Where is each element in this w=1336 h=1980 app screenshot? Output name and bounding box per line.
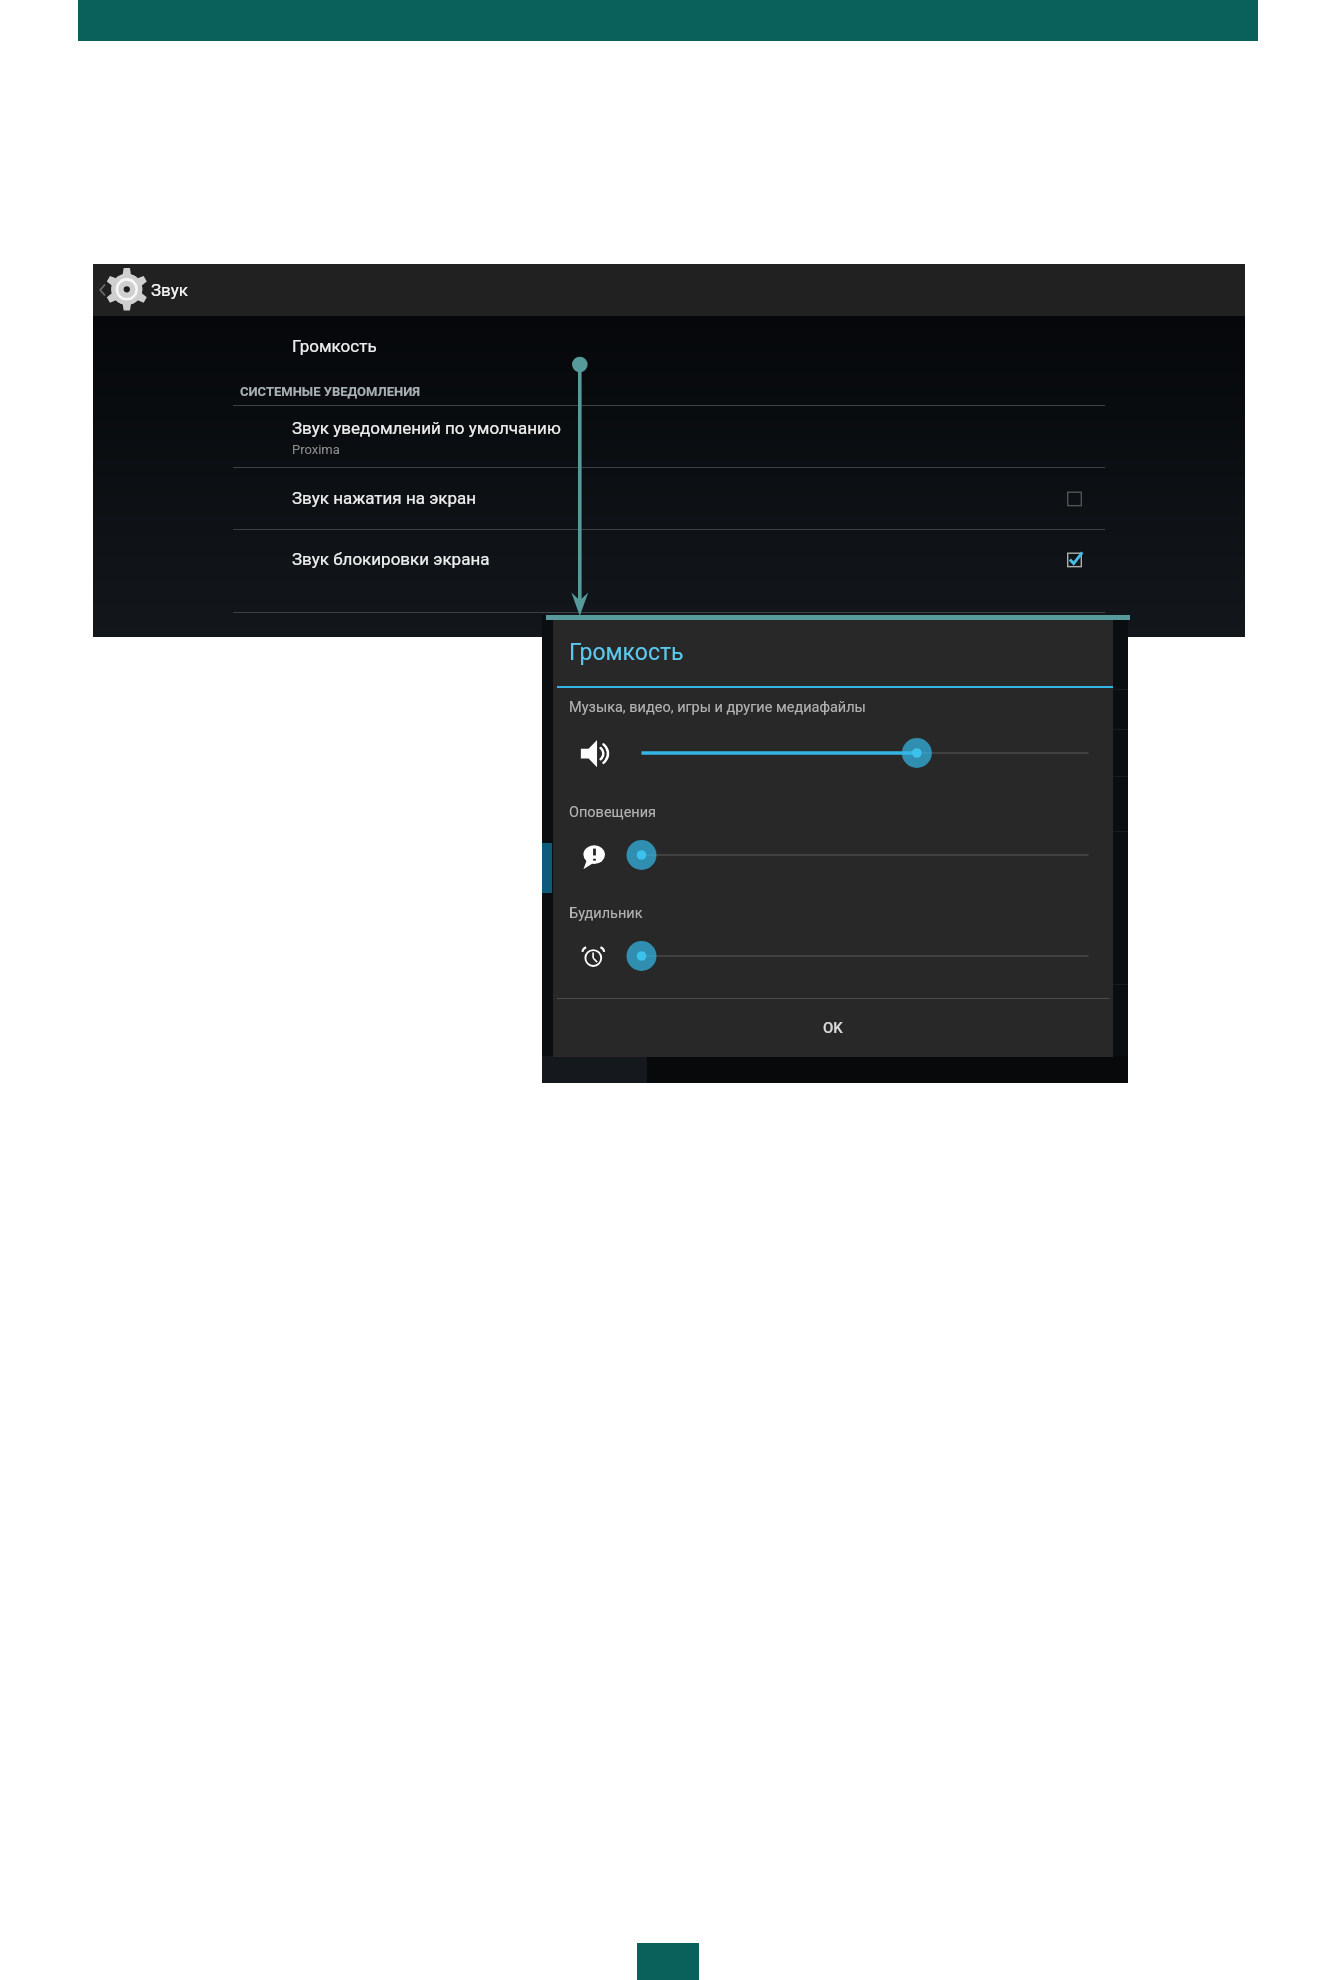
button[interactable]: Звук блокировки экрана — [233, 530, 1105, 591]
button[interactable]: OK — [553, 999, 1113, 1057]
staticText: Звук блокировки экрана — [292, 549, 490, 569]
button[interactable]: Disabled — [1066, 490, 1083, 507]
staticText: Громкость — [569, 639, 684, 666]
staticText: OK — [823, 1019, 843, 1037]
button[interactable]: Enabled — [1066, 551, 1083, 568]
staticText: Громкость — [292, 336, 377, 356]
button[interactable]: Звук уведомлений по умолчанию — [233, 406, 1105, 467]
staticText: Звук уведомлений по умолчанию — [292, 418, 561, 438]
staticText: Звук — [151, 280, 188, 300]
staticText: Музыка, видео, игры и другие медиафайлы — [569, 699, 866, 716]
button[interactable]: Громкость — [233, 316, 1105, 371]
staticText: СИСТЕМНЫЕ УВЕДОМЛЕНИЯ — [240, 384, 420, 399]
staticText: Будильник — [569, 905, 643, 922]
staticText: Proxima — [292, 442, 340, 457]
staticText: Оповещения — [569, 804, 657, 821]
staticText: Звук нажатия на экран — [292, 488, 477, 508]
button[interactable]: Back to Settings — [95, 264, 188, 316]
button[interactable]: Звук нажатия на экран — [233, 468, 1105, 529]
